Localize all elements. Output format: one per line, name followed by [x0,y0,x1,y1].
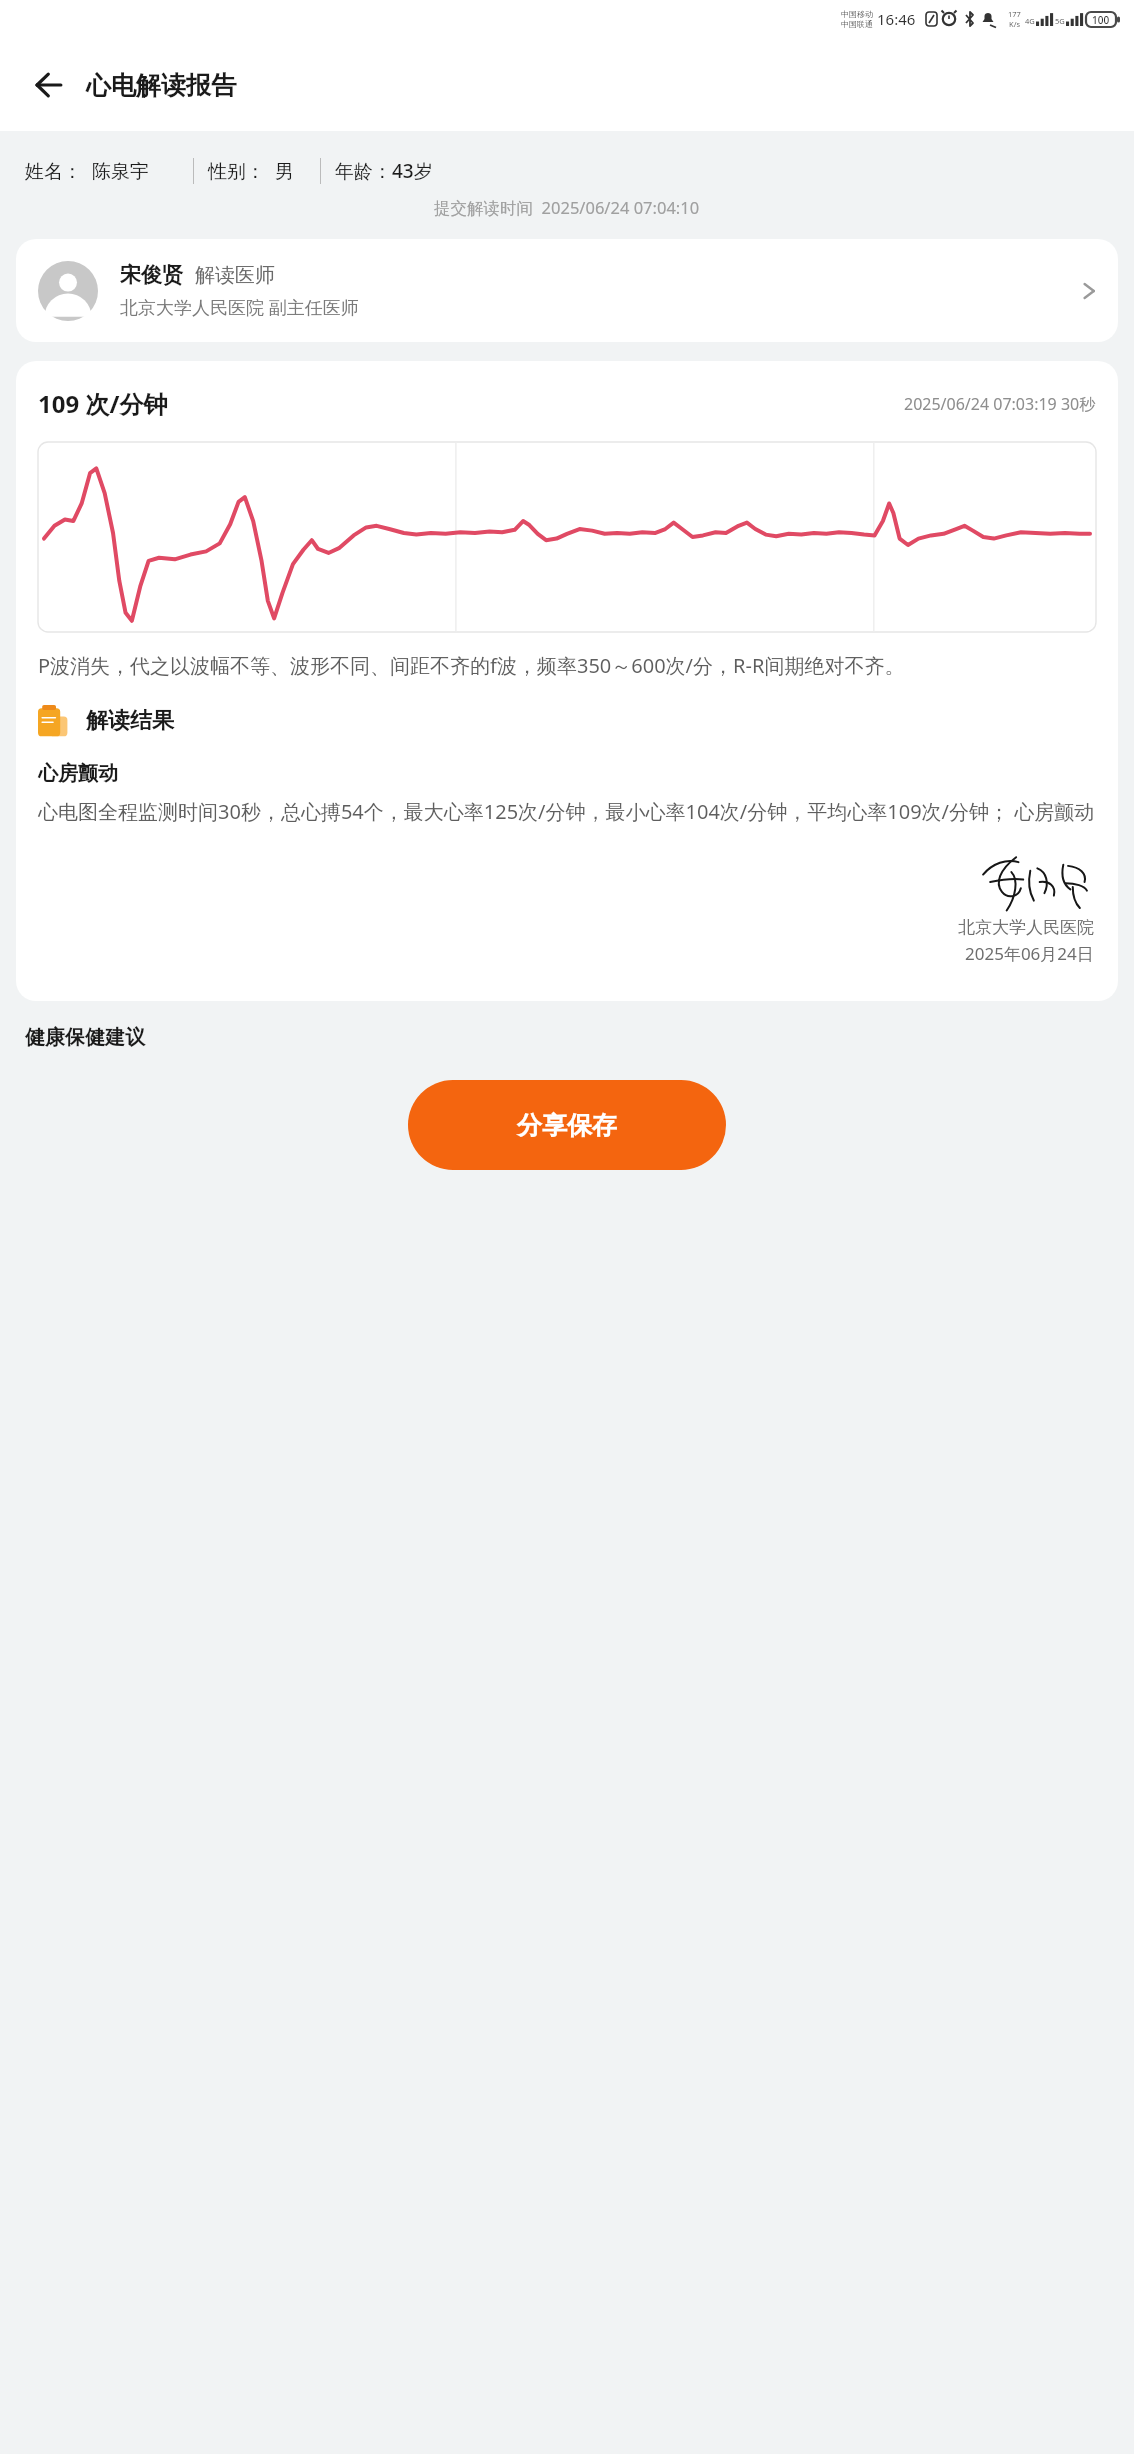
staticText: 心电图全程监测时间30秒，总心搏54个，最大心率125次/分钟，最小心率104次… [38,798,1095,825]
staticText: 100 [1092,13,1110,27]
staticText: 解读结果 [86,707,174,735]
staticText: 解读医师 [195,263,275,288]
staticText: 2025/06/24 07:03:19 30秒 [904,393,1096,415]
staticText: 177 [1008,9,1021,19]
staticText: 中国移动 [841,9,873,19]
button[interactable]: Back [22,57,78,113]
staticText: 心电解读报告 [86,70,236,101]
staticText: 心房颤动 [38,761,118,786]
staticText: 109 次/分钟 [38,387,168,420]
staticText: 北京大学人民医院 [958,917,1094,938]
staticText: 宋俊贤 [120,262,183,288]
staticText: 中国联通 [841,19,873,29]
button[interactable]: 宋俊贤 [16,239,1118,342]
staticText: 北京大学人民医院 副主任医师 [120,295,359,320]
staticText: K/s [1009,19,1021,29]
staticText: 年龄：43岁 [335,158,433,184]
staticText: 姓名： 陈泉宇 [25,158,149,184]
staticText: 提交解读时间 2025/06/24 07:04:10 [434,196,700,219]
staticText: 健康保健建议 [25,1025,145,1050]
staticText: 分享保存 [517,1110,617,1141]
staticText: P波消失，代之以波幅不等、波形不同、间距不齐的f波，频率350～600次/分，R… [38,652,905,679]
staticText: 16:46 [877,9,916,29]
staticText: 性别： 男 [208,158,294,184]
staticText: 5G [1055,16,1065,26]
staticText: 4G [1025,16,1035,26]
staticText: 2025年06月24日 [965,942,1094,965]
button[interactable]: 分享保存 [408,1080,726,1170]
